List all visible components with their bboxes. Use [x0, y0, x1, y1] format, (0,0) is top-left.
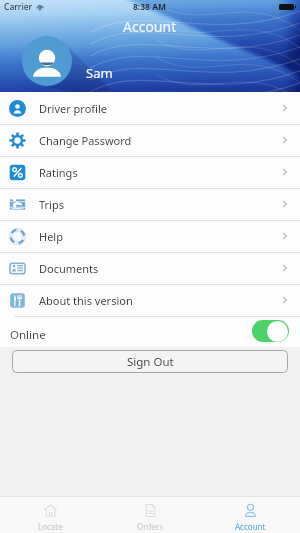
button[interactable]: Online toggle	[252, 320, 289, 342]
staticText: Online	[10, 327, 46, 343]
button[interactable]: Ratings	[0, 156, 300, 188]
button[interactable]: Locate	[0, 497, 100, 533]
staticText: Sam	[86, 64, 113, 82]
button[interactable]: Documents	[0, 252, 300, 284]
staticText: Sign Out	[127, 354, 174, 370]
staticText: Account	[123, 17, 177, 36]
button[interactable]: Sign Out	[12, 350, 288, 373]
staticText: 8:38 AM	[133, 1, 167, 13]
staticText: Documents	[39, 261, 99, 276]
button[interactable]: Trips	[0, 188, 300, 220]
staticText: Change Password	[39, 133, 132, 148]
button[interactable]: Driver profile	[0, 92, 300, 124]
staticText: Driver profile	[39, 101, 108, 116]
staticText: Help	[39, 229, 63, 244]
staticText: Locate	[38, 521, 63, 532]
button[interactable]: Help	[0, 220, 300, 252]
staticText: Orders	[137, 521, 163, 532]
button[interactable]: About this version	[0, 284, 300, 316]
button[interactable]: Change Password	[0, 124, 300, 156]
staticText: Trips	[39, 197, 64, 212]
button[interactable]: Account	[200, 497, 300, 533]
button[interactable]: Orders	[100, 497, 200, 533]
staticText: Account	[235, 521, 266, 532]
staticText: Carrier	[4, 1, 33, 13]
staticText: Ratings	[39, 165, 78, 180]
staticText: About this version	[39, 293, 133, 308]
